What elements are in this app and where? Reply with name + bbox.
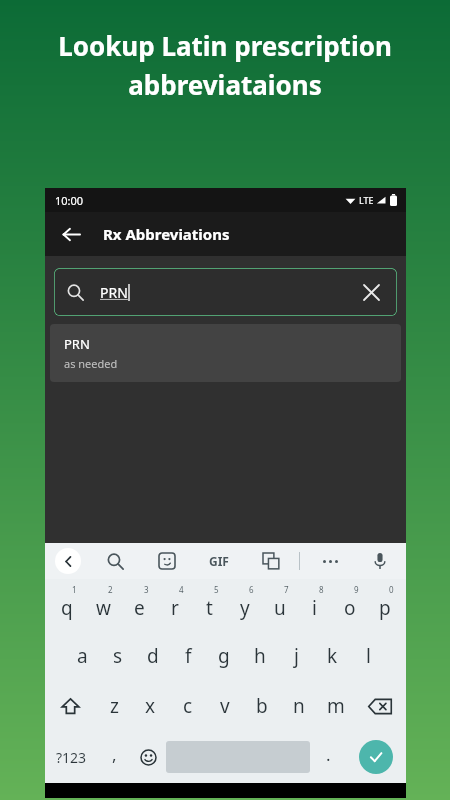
staticText: b xyxy=(256,693,268,719)
button[interactable]: 1 xyxy=(49,581,85,631)
button[interactable]: ?123 xyxy=(45,731,98,783)
button[interactable]: f xyxy=(170,631,206,681)
button[interactable]: Back xyxy=(53,216,89,252)
staticText: v xyxy=(220,693,230,719)
staticText: z xyxy=(110,693,119,719)
button[interactable]: 6 xyxy=(227,581,262,631)
staticText: p xyxy=(379,595,391,621)
button[interactable]: a xyxy=(65,631,100,681)
staticText: 4 xyxy=(179,584,184,595)
staticText: 6 xyxy=(249,584,254,595)
button[interactable]: Search xyxy=(101,547,129,575)
button[interactable]: 7 xyxy=(262,581,297,631)
staticText: 8 xyxy=(319,584,324,595)
staticText: 0 xyxy=(389,584,394,595)
button[interactable]: 8 xyxy=(297,581,332,631)
button[interactable]: PRN xyxy=(50,324,401,382)
staticText: r xyxy=(171,595,179,621)
staticText: ?123 xyxy=(56,748,87,767)
button[interactable]: 4 xyxy=(157,581,192,631)
button[interactable]: c xyxy=(169,681,206,731)
staticText: i xyxy=(312,595,317,621)
staticText: abbreviataions xyxy=(128,67,322,102)
staticText: PRN xyxy=(100,283,128,302)
staticText: 1 xyxy=(72,584,77,595)
staticText: 3 xyxy=(144,584,149,595)
staticText: Lookup Latin prescription xyxy=(58,28,392,63)
button[interactable]: 0 xyxy=(367,581,402,631)
staticText: s xyxy=(113,643,123,669)
staticText: n xyxy=(293,693,305,719)
button[interactable]: PRN xyxy=(54,268,397,316)
button[interactable]: k xyxy=(314,631,350,681)
button[interactable]: x xyxy=(132,681,169,731)
button[interactable]: m xyxy=(317,681,354,731)
staticText: a xyxy=(77,643,88,669)
button[interactable]: h xyxy=(242,631,278,681)
staticText: m xyxy=(327,693,345,719)
staticText: h xyxy=(254,643,266,669)
staticText: PRN xyxy=(64,335,90,353)
staticText: j xyxy=(294,643,299,669)
button[interactable]: Back xyxy=(55,548,81,574)
staticText: Rx Abbreviations xyxy=(103,224,230,244)
staticText: l xyxy=(366,643,371,669)
staticText: 5 xyxy=(214,584,219,595)
staticText: . xyxy=(326,743,331,766)
staticText: u xyxy=(274,595,286,621)
button[interactable]: Voice input xyxy=(366,547,394,575)
staticText: c xyxy=(183,693,193,719)
staticText: GIF xyxy=(209,553,229,569)
button[interactable]: 9 xyxy=(332,581,367,631)
staticText: e xyxy=(134,595,145,621)
button[interactable]: d xyxy=(135,631,170,681)
button[interactable]: z xyxy=(96,681,132,731)
button[interactable]: Backspace xyxy=(354,681,406,731)
staticText: LTE xyxy=(359,194,374,206)
staticText: f xyxy=(185,643,192,669)
button[interactable]: v xyxy=(206,681,243,731)
button[interactable]: Clear xyxy=(358,279,384,305)
staticText: 9 xyxy=(354,584,359,595)
button[interactable]: 5 xyxy=(192,581,227,631)
staticText: w xyxy=(96,595,111,621)
staticText: t xyxy=(206,595,213,621)
staticText: o xyxy=(344,595,356,621)
staticText: d xyxy=(147,643,159,669)
button[interactable]: GIF xyxy=(203,547,235,575)
button[interactable]: s xyxy=(100,631,135,681)
staticText: as needed xyxy=(64,356,118,371)
button[interactable]: Enter xyxy=(359,740,393,774)
button[interactable]: l xyxy=(350,631,386,681)
button[interactable]: Emoji xyxy=(130,731,166,783)
staticText: , xyxy=(112,743,117,766)
staticText: 7 xyxy=(284,584,289,595)
staticText: y xyxy=(240,595,250,621)
button[interactable]: b xyxy=(243,681,280,731)
button[interactable]: More options xyxy=(316,547,344,575)
button[interactable]: n xyxy=(280,681,317,731)
staticText: q xyxy=(61,595,73,621)
button[interactable]: . xyxy=(310,731,346,783)
button[interactable]: j xyxy=(278,631,314,681)
button[interactable]: Translate xyxy=(257,547,285,575)
button[interactable]: g xyxy=(206,631,242,681)
staticText: 2 xyxy=(108,584,113,595)
button[interactable]: Stickers xyxy=(153,547,181,575)
staticText: 10:00 xyxy=(55,193,84,208)
staticText: x xyxy=(145,693,156,719)
staticText: k xyxy=(327,643,338,669)
staticText: g xyxy=(218,643,230,669)
button[interactable]: 2 xyxy=(85,581,121,631)
button[interactable]: 3 xyxy=(121,581,157,631)
button[interactable]: Shift xyxy=(45,681,96,731)
button[interactable]: , xyxy=(98,731,130,783)
